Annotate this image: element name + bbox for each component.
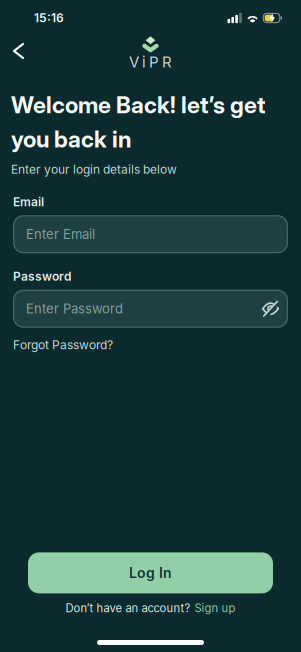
- staticText: Welcome Back! let’s get you back in: [11, 91, 265, 153]
- button[interactable]: Enter Email: [13, 215, 288, 253]
- button[interactable]: Enter Password: [13, 290, 288, 328]
- staticText: V i P R: [129, 53, 172, 71]
- staticText: Enter Password: [26, 301, 123, 317]
- staticText: Don’t have an account?: [65, 601, 190, 615]
- staticText: Password: [13, 269, 71, 284]
- staticText: Enter your login details below: [11, 162, 177, 177]
- staticText: Log In: [129, 564, 172, 581]
- staticText: Enter Email: [26, 226, 95, 242]
- button[interactable]: [0, 36, 33, 66]
- staticText: Forgot Password?: [13, 338, 113, 352]
- button[interactable]: Don’t have an account?: [65, 593, 235, 615]
- button[interactable]: Log In: [28, 552, 273, 593]
- staticText: 15:16: [34, 11, 64, 25]
- button[interactable]: Forgot Password?: [13, 338, 113, 352]
- staticText: Email: [13, 195, 44, 209]
- staticText: Sign up: [194, 601, 235, 615]
